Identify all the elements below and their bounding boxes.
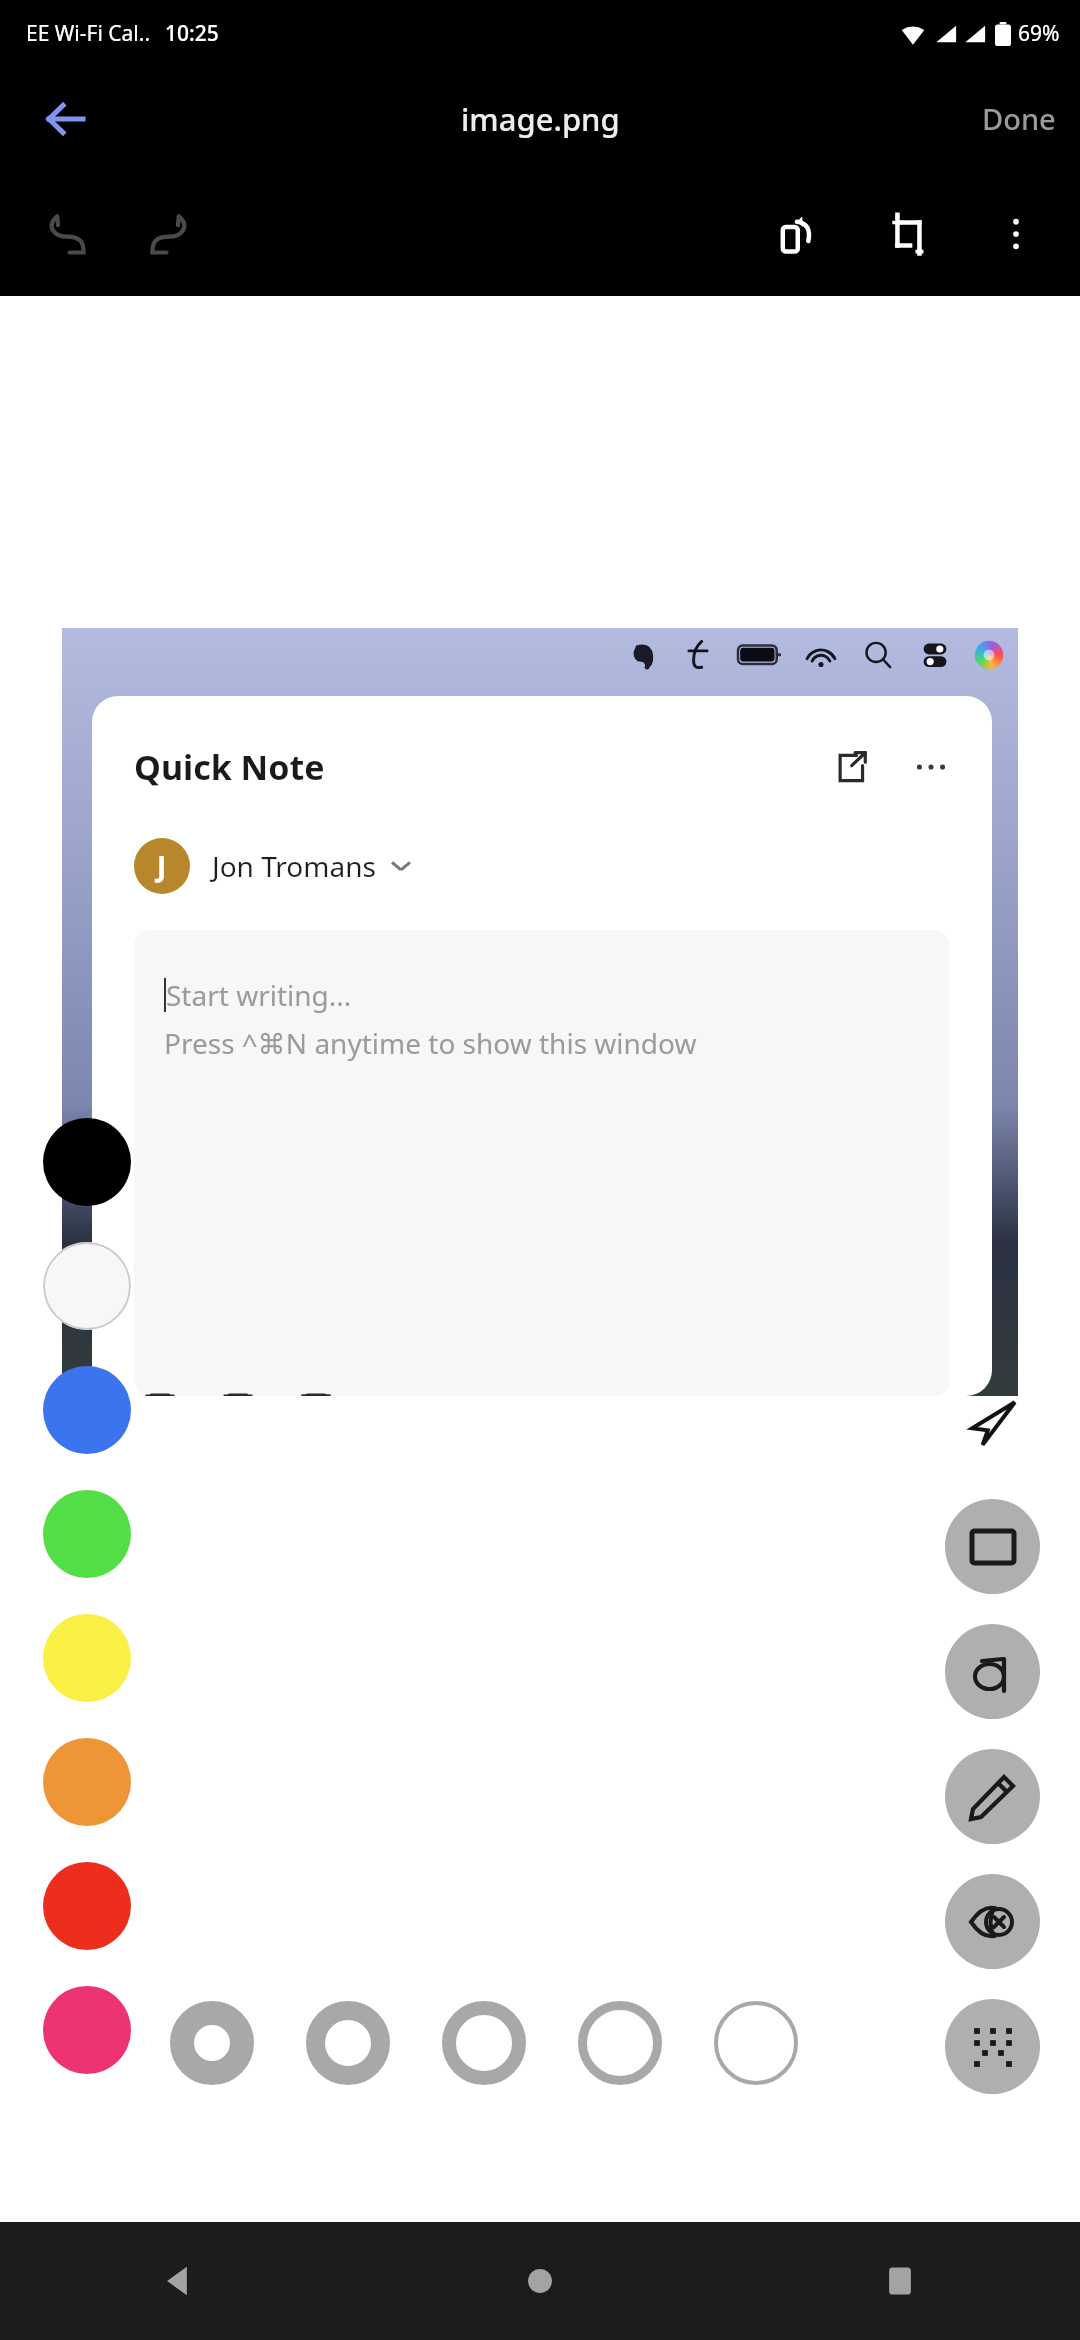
button[interactable]: Crop — [870, 196, 946, 272]
staticText: 69% — [1018, 19, 1060, 48]
staticText: 10:25 — [165, 19, 219, 48]
button[interactable]: Colour 7 — [43, 1862, 131, 1950]
staticText: Jon Tromans — [212, 847, 376, 885]
staticText: Start writing... — [166, 976, 352, 1014]
button[interactable]: Note options — [904, 740, 958, 794]
button[interactable]: Back — [0, 2222, 360, 2340]
staticText: Quick Note — [134, 744, 325, 790]
button[interactable]: Draw — [945, 1749, 1040, 1844]
button[interactable]: Stroke size 3 — [437, 1996, 531, 2090]
button[interactable]: Colour 1 — [43, 1118, 131, 1206]
staticText: image.png — [461, 98, 620, 140]
button[interactable]: Rectangle — [945, 1499, 1040, 1594]
button[interactable]: Home — [360, 2222, 720, 2340]
button[interactable]: More options — [978, 196, 1054, 272]
button[interactable]: Text — [945, 1624, 1040, 1719]
button[interactable]: Open note — [824, 740, 878, 794]
button[interactable]: Select — [945, 1374, 1040, 1469]
button[interactable]: Colour 8 — [43, 1986, 131, 2074]
button[interactable]: Redo — [132, 196, 208, 272]
button[interactable]: Undo — [28, 196, 104, 272]
button[interactable]: Stroke size 4 — [573, 1996, 667, 2090]
button[interactable]: Stroke size 1 — [165, 1996, 259, 2090]
button[interactable]: Rotate — [758, 196, 834, 272]
button[interactable]: Stroke size 5 — [709, 1996, 803, 2090]
button[interactable]: Start writing... — [134, 930, 950, 1396]
button[interactable]: Back — [30, 84, 100, 154]
staticText: Done — [982, 99, 1056, 138]
button[interactable]: Colour 6 — [43, 1738, 131, 1826]
button[interactable]: Done — [958, 89, 1080, 148]
button[interactable]: Colour 3 — [43, 1366, 131, 1454]
button[interactable]: Colour 2 — [43, 1242, 131, 1330]
button[interactable]: Stroke size 2 — [301, 1996, 395, 2090]
staticText: EE Wi-Fi Cal.. — [26, 19, 151, 48]
button[interactable]: Colour 5 — [43, 1614, 131, 1702]
button[interactable]: Pixelate — [945, 1999, 1040, 2094]
button[interactable]: Colour 4 — [43, 1490, 131, 1578]
button[interactable]: Recents — [720, 2222, 1080, 2340]
staticText: J — [157, 847, 167, 885]
button[interactable]: Blur out — [945, 1874, 1040, 1969]
staticText: Press ^⌘N anytime to show this window — [164, 1024, 697, 1062]
